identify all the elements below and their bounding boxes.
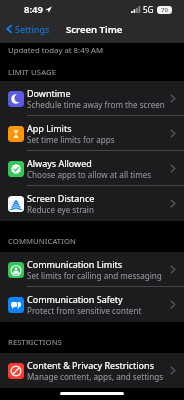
- staticText: Choose apps to allow at all times: [27, 169, 152, 180]
- staticText: Set limits for calling and messaging: [27, 270, 162, 281]
- staticText: Always Allowed: [27, 157, 92, 169]
- staticText: Reduce eye strain: [27, 204, 94, 215]
- staticText: Manage content, apps, and settings: [27, 371, 164, 382]
- staticText: Communication Limits: [27, 258, 123, 270]
- staticText: Settings: [15, 23, 50, 35]
- staticText: Set time limits for apps: [27, 134, 115, 145]
- button[interactable]: Downtime: [0, 81, 184, 116]
- staticText: 8:49: [24, 3, 43, 16]
- staticText: RESTRICTIONS: [8, 337, 62, 347]
- staticText: 5G: [143, 4, 154, 15]
- staticText: Screen Distance: [27, 192, 95, 204]
- button[interactable]: Screen Distance: [0, 186, 184, 221]
- staticText: Updated today at 8:49 AM: [8, 45, 104, 56]
- button[interactable]: App Limits: [0, 116, 184, 151]
- staticText: LIMIT USAGE: [8, 67, 57, 77]
- staticText: 70: [161, 6, 168, 14]
- staticText: COMMUNICATION: [8, 236, 76, 246]
- staticText: Content & Privacy Restrictions: [27, 359, 154, 371]
- button[interactable]: Always Allowed: [0, 151, 184, 186]
- staticText: Downtime: [27, 87, 71, 99]
- button[interactable]: Communication Safety: [0, 287, 184, 322]
- button[interactable]: Communication Limits: [0, 252, 184, 287]
- staticText: Screen Time: [66, 23, 123, 36]
- staticText: Schedule time away from the screen: [27, 99, 165, 110]
- staticText: App Limits: [27, 122, 72, 134]
- button[interactable]: Content & Privacy Restrictions: [0, 353, 184, 388]
- button[interactable]: Settings: [6, 23, 50, 35]
- staticText: Protect from sensitive content: [27, 305, 142, 316]
- staticText: Communication Safety: [27, 293, 123, 305]
